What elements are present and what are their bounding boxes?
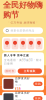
staticText: 券: [30, 45, 31, 47]
staticText: 新人专享 首单立减: [4, 54, 29, 57]
staticText: 已售 1.2万件: [15, 99, 21, 100]
button[interactable]: 券: [35, 38, 42, 49]
staticText: · 亿万补贴 放肆嗨购 ·: [8, 21, 37, 24]
button[interactable]: 券: [19, 38, 26, 49]
staticText: 全民好物嗨购节: [3, 0, 43, 20]
button[interactable]: 搜索你想要的商品: [3, 27, 43, 34]
staticText: 抢购: [35, 97, 41, 100]
staticText: 已售 1.2万件: [15, 84, 21, 86]
staticText: 抢购: [35, 82, 41, 85]
staticText: 品牌直供好物: [15, 91, 30, 98]
staticText: 券: [22, 45, 23, 47]
staticText: 品牌直供好物: [15, 77, 30, 83]
staticText: 限时券: [6, 69, 15, 73]
staticText: 券: [6, 45, 7, 47]
staticText: 搜索你想要的商品: [10, 29, 34, 32]
button[interactable]: 券: [3, 38, 10, 49]
staticText: 券: [14, 45, 15, 47]
staticText: 立即领取: [24, 69, 36, 73]
button[interactable]: 品牌直供好物: [2, 77, 44, 90]
staticText: ¥39: [15, 87, 21, 91]
button[interactable]: 立即领取: [18, 68, 42, 74]
staticText: 全场通用 · 满99减30 · 限今日使用: [4, 58, 42, 65]
button[interactable]: 品牌直供好物: [2, 92, 44, 100]
staticText: 券: [38, 45, 39, 47]
button[interactable]: 券: [27, 38, 34, 49]
button[interactable]: 券: [11, 38, 18, 49]
